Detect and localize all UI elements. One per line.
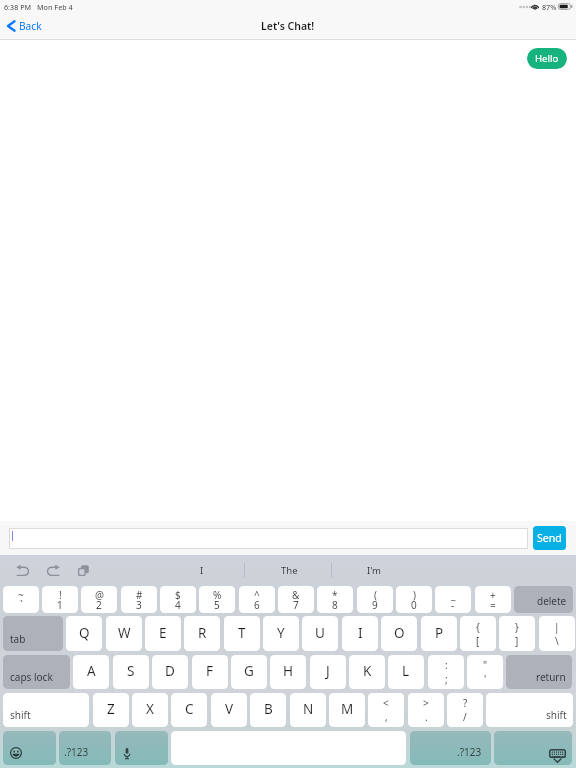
staticText: V xyxy=(225,700,234,718)
button[interactable]: W xyxy=(106,616,142,651)
button[interactable]: ? xyxy=(447,693,483,727)
button[interactable]: shift xyxy=(3,693,89,727)
staticText: 7 xyxy=(293,598,299,612)
button[interactable]: > xyxy=(408,693,444,727)
button[interactable]: N xyxy=(290,693,326,727)
button[interactable]: ~ xyxy=(3,586,39,613)
button[interactable]: I xyxy=(342,616,378,651)
staticText: N xyxy=(303,700,314,718)
staticText: ! xyxy=(59,588,62,602)
button[interactable]: $ xyxy=(160,586,196,613)
button[interactable]: : xyxy=(428,655,464,689)
button[interactable]: } xyxy=(499,616,535,651)
staticText: ^ xyxy=(254,588,260,602)
staticText: I xyxy=(200,564,204,577)
button[interactable]: P xyxy=(421,616,457,651)
staticText: O xyxy=(394,624,405,642)
staticText: 4 xyxy=(175,598,181,612)
staticText: B xyxy=(264,700,273,718)
staticText: I xyxy=(358,624,363,642)
button[interactable]: " xyxy=(467,655,503,689)
button[interactable]: .?123 xyxy=(410,731,491,765)
button[interactable]: S xyxy=(113,655,149,689)
button[interactable]: { xyxy=(460,616,496,651)
staticText: # xyxy=(136,588,143,602)
staticText: . xyxy=(425,710,428,724)
button[interactable]: B xyxy=(250,693,286,727)
button[interactable]: H xyxy=(270,655,306,689)
button[interactable]: | xyxy=(539,616,575,651)
button[interactable]: & xyxy=(278,586,314,613)
staticText: tab xyxy=(10,632,26,646)
button[interactable]: Dictate xyxy=(115,731,168,765)
button[interactable]: @ xyxy=(81,586,117,613)
button[interactable]: ! xyxy=(42,586,78,613)
button[interactable]: Z xyxy=(93,693,129,727)
staticText: The xyxy=(281,564,298,577)
staticText: C xyxy=(185,700,194,718)
staticText: caps lock xyxy=(10,670,53,684)
staticText: A xyxy=(87,662,96,680)
button[interactable]: Send xyxy=(533,526,566,550)
button[interactable]: L xyxy=(388,655,424,689)
button[interactable]: O xyxy=(381,616,417,651)
button[interactable]: ^ xyxy=(239,586,275,613)
button[interactable]: Redo xyxy=(42,560,64,582)
button[interactable]: X xyxy=(132,693,168,727)
button[interactable] xyxy=(9,528,528,549)
button[interactable]: F xyxy=(192,655,228,689)
staticText: | xyxy=(554,620,560,634)
button[interactable]: J xyxy=(310,655,346,689)
staticText: 6 xyxy=(254,598,260,612)
button[interactable]: delete xyxy=(514,586,573,613)
staticText: X xyxy=(146,700,154,718)
button[interactable]: T xyxy=(224,616,260,651)
button[interactable]: Emoji xyxy=(3,731,56,765)
button[interactable]: Back xyxy=(0,15,52,37)
button[interactable]: Hello xyxy=(527,48,567,69)
button[interactable]: tab xyxy=(3,616,63,651)
button[interactable]: M xyxy=(329,693,365,727)
staticText: * xyxy=(332,588,338,602)
staticText: ( xyxy=(374,588,377,602)
button[interactable]: # xyxy=(121,586,157,613)
button[interactable]: ) xyxy=(396,586,432,613)
button[interactable]: ( xyxy=(357,586,393,613)
button[interactable]: A xyxy=(73,655,109,689)
button[interactable]: I'm xyxy=(346,557,402,584)
button[interactable]: caps lock xyxy=(3,655,70,689)
button[interactable]: E xyxy=(145,616,181,651)
button[interactable]: _ xyxy=(435,586,471,613)
staticText: - xyxy=(451,598,455,612)
button[interactable]: * xyxy=(317,586,353,613)
button[interactable]: % xyxy=(199,586,235,613)
button[interactable]: The xyxy=(261,557,317,584)
button[interactable]: C xyxy=(171,693,207,727)
button[interactable]: shift xyxy=(486,693,573,727)
staticText: Y xyxy=(277,624,285,642)
button[interactable]: Hide keyboard xyxy=(494,731,572,765)
button[interactable]: D xyxy=(152,655,188,689)
button[interactable]: Q xyxy=(66,616,102,651)
button[interactable]: K xyxy=(349,655,385,689)
button[interactable]: V xyxy=(211,693,247,727)
staticText: % xyxy=(213,588,222,602)
button[interactable]: .?123 xyxy=(59,731,111,765)
button[interactable]: U xyxy=(302,616,338,651)
button[interactable]: Y xyxy=(263,616,299,651)
button[interactable]: return xyxy=(506,655,572,689)
staticText: 8 xyxy=(332,598,338,612)
staticText: + xyxy=(490,588,496,602)
staticText: $ xyxy=(175,588,181,602)
button[interactable]: < xyxy=(368,693,404,727)
button[interactable]: I xyxy=(174,557,230,584)
button[interactable]: + xyxy=(475,586,511,613)
staticText: Send xyxy=(537,531,562,545)
button[interactable]: Paste xyxy=(73,560,95,582)
button[interactable]: G xyxy=(231,655,267,689)
button[interactable]: R xyxy=(184,616,220,651)
staticText: F xyxy=(206,662,214,680)
staticText: ` xyxy=(20,598,23,612)
button[interactable]: Undo xyxy=(12,560,34,582)
